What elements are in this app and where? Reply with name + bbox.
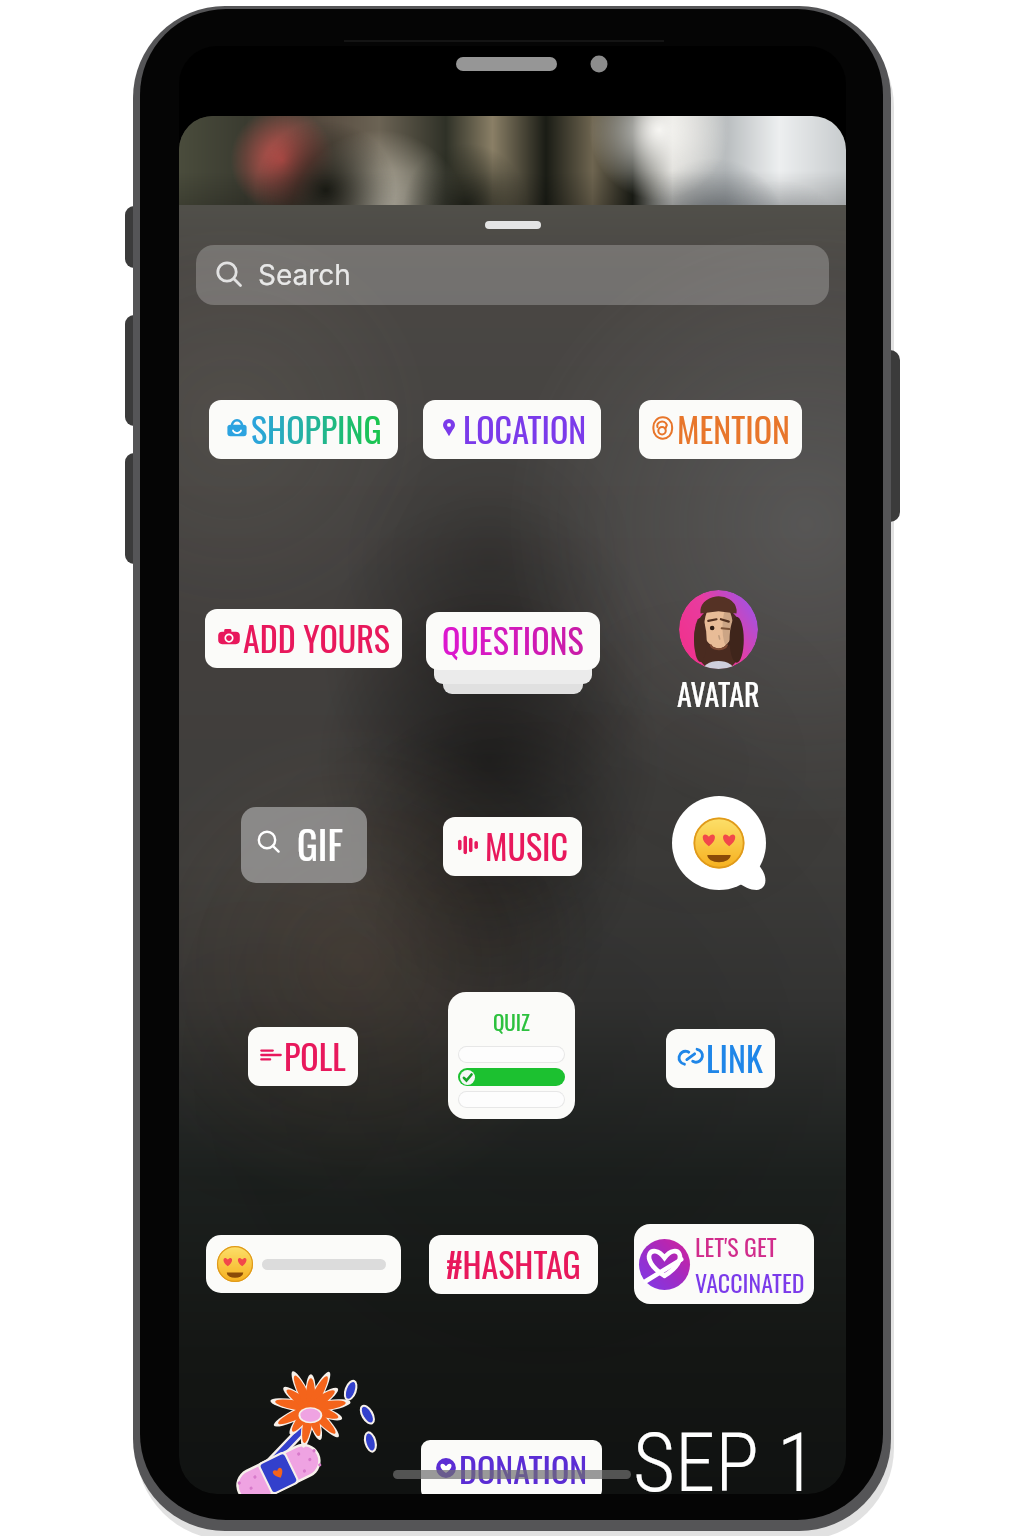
- staticText: DONATION: [459, 1443, 588, 1493]
- staticText: SEP 1: [633, 1416, 817, 1494]
- button[interactable]: SHOPPING: [209, 400, 398, 459]
- staticText: POLL: [284, 1030, 346, 1080]
- button[interactable]: MENTION: [639, 400, 802, 459]
- staticText: Search: [258, 258, 351, 292]
- button[interactable]: MUSIC: [443, 817, 582, 876]
- button[interactable]: Emoji slider sticker: [206, 1235, 401, 1293]
- button[interactable]: QUIZ: [448, 992, 575, 1119]
- staticText: LET'S GET: [695, 1228, 777, 1264]
- button[interactable]: POLL: [248, 1027, 358, 1086]
- button[interactable]: GIF: [241, 807, 367, 883]
- button[interactable]: Emoji reaction sticker: [672, 798, 772, 898]
- button[interactable]: #HASHTAG: [429, 1235, 598, 1294]
- staticText: #HASHTAG: [446, 1238, 581, 1288]
- staticText: SHOPPING: [251, 403, 382, 453]
- staticText: MENTION: [677, 403, 790, 453]
- button[interactable]: LINK: [666, 1029, 775, 1088]
- staticText: MUSIC: [485, 820, 568, 870]
- staticText: LINK: [706, 1032, 763, 1082]
- button[interactable]: DONATION: [421, 1440, 602, 1494]
- button[interactable]: QUESTIONS: [426, 612, 600, 670]
- button[interactable]: LOCATION: [423, 400, 601, 459]
- staticText: AVATAR: [677, 671, 760, 715]
- staticText: QUIZ: [493, 1006, 530, 1037]
- button[interactable]: ADD YOURS: [205, 609, 402, 668]
- staticText: LOCATION: [463, 403, 587, 453]
- button[interactable]: Search: [196, 245, 829, 305]
- staticText: GIF: [297, 814, 343, 872]
- button[interactable]: LET'S GET: [634, 1224, 814, 1304]
- staticText: ADD YOURS: [243, 612, 390, 662]
- staticText: QUESTIONS: [442, 614, 584, 664]
- button[interactable]: Avatar sticker: [677, 590, 760, 715]
- staticText: VACCINATED: [695, 1264, 805, 1300]
